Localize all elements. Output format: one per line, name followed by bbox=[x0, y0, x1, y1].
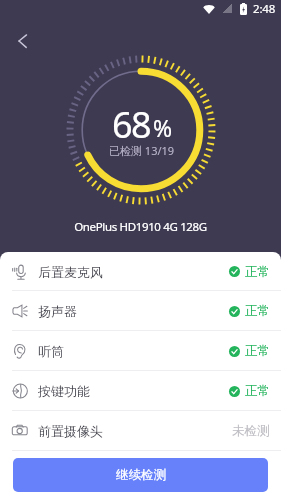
button[interactable]: Back bbox=[7, 25, 39, 57]
button[interactable]: 继续检测 bbox=[13, 458, 268, 492]
staticText: 听筒 bbox=[38, 343, 64, 359]
staticText: 未检测 bbox=[232, 423, 270, 439]
staticText: 前置摄像头 bbox=[38, 423, 103, 439]
staticText: 后置麦克风 bbox=[38, 264, 103, 280]
staticText: 正常 bbox=[245, 383, 270, 399]
staticText: % bbox=[153, 112, 173, 143]
button[interactable]: 后置麦克风 bbox=[0, 252, 281, 291]
button[interactable]: 按键功能 bbox=[0, 371, 281, 411]
button[interactable]: 扬声器 bbox=[0, 291, 281, 331]
button[interactable]: 听筒 bbox=[0, 331, 281, 371]
staticText: 已检测 13/19 bbox=[109, 143, 175, 158]
staticText: 正常 bbox=[245, 343, 270, 359]
button[interactable]: 前置摄像头 bbox=[0, 411, 281, 451]
staticText: 68 bbox=[112, 100, 151, 149]
staticText: 正常 bbox=[245, 303, 270, 319]
staticText: 正常 bbox=[245, 264, 270, 280]
staticText: 2:48 bbox=[253, 1, 276, 17]
staticText: 继续检测 bbox=[116, 467, 166, 483]
staticText: 按键功能 bbox=[38, 383, 90, 399]
staticText: 扬声器 bbox=[38, 303, 77, 319]
staticText: OnePlus HD1910 4G 128G bbox=[0, 219, 281, 235]
